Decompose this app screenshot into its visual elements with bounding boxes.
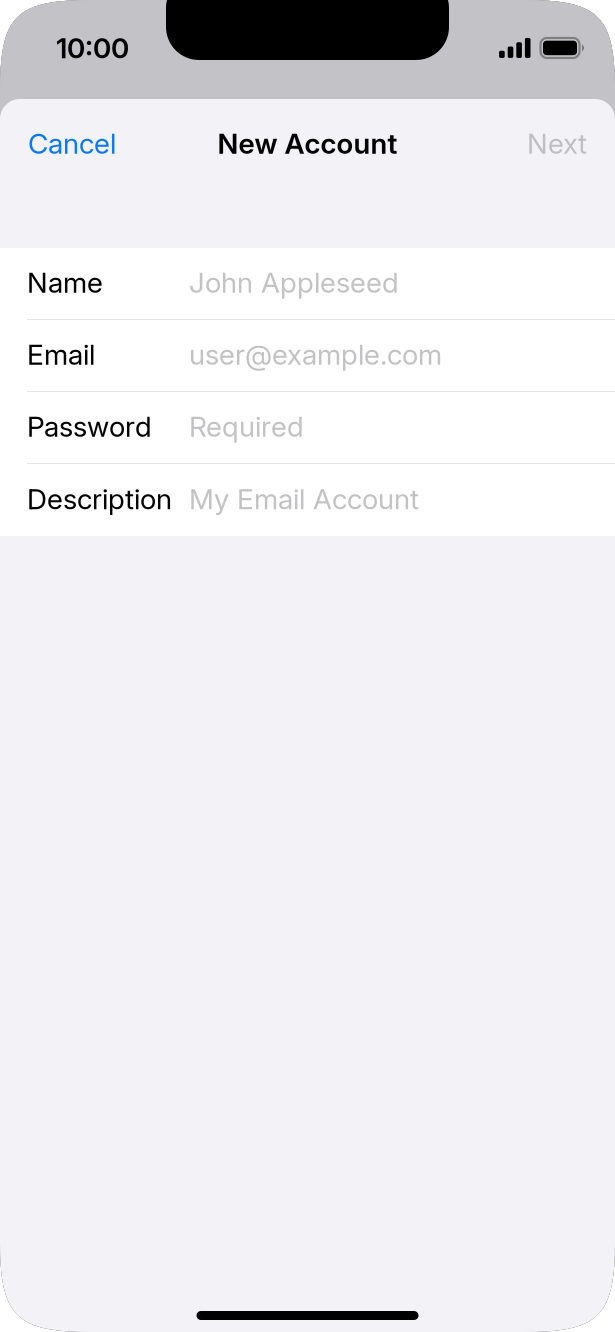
staticText: Password [27, 410, 152, 443]
staticText: New Account [217, 127, 397, 160]
staticText: John Appleseed [189, 266, 399, 299]
staticText: My Email Account [189, 482, 419, 516]
staticText: Email [27, 338, 95, 371]
staticText: Description [27, 482, 172, 516]
staticText: Cancel [28, 127, 116, 160]
button[interactable]: Cancel [0, 99, 138, 188]
staticText: Name [27, 266, 103, 299]
button[interactable]: Next [505, 99, 615, 188]
staticText: user@example.com [189, 338, 442, 371]
staticText: Required [189, 410, 304, 443]
staticText: Next [527, 127, 587, 160]
staticText: 10:00 [56, 31, 129, 65]
